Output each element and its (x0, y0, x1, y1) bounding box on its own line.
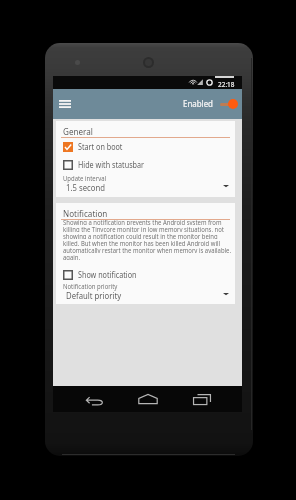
button[interactable]: Notification priority (56, 282, 235, 302)
button[interactable]: Enabled (183, 89, 242, 119)
button[interactable]: Start on boot (56, 140, 235, 153)
staticText: Notification priority (63, 282, 118, 291)
staticText: showing a notification could result in t… (63, 232, 218, 239)
staticText: General (63, 125, 94, 137)
button[interactable]: Show notification (56, 268, 235, 281)
staticText: Enabled (183, 98, 214, 110)
staticText: Default priority (66, 290, 122, 302)
button[interactable]: Open navigation drawer (53, 89, 75, 119)
button[interactable]: Back (78, 386, 112, 412)
staticText: Show notification (78, 269, 136, 280)
staticText: killed. But when the monitor has been ki… (63, 239, 220, 246)
staticText: Hide with statusbar (78, 159, 145, 170)
staticText: again. (63, 253, 80, 260)
button[interactable]: Hide with statusbar (56, 158, 235, 171)
staticText: 1.5 second (66, 182, 106, 194)
button[interactable]: Recent apps (185, 386, 219, 412)
staticText: Start on boot (78, 141, 123, 152)
staticText: killing the Tinycore monitor in low memo… (63, 225, 224, 232)
staticText: 22:18 (218, 79, 235, 89)
button[interactable]: Update interval (56, 174, 235, 194)
button[interactable]: Home (130, 386, 166, 412)
staticText: automatically restart the monitor when m… (63, 246, 231, 253)
staticText: Notification (63, 207, 108, 219)
staticText: Showing a notification prevents the Andr… (63, 218, 222, 225)
staticText: Update interval (63, 174, 106, 183)
